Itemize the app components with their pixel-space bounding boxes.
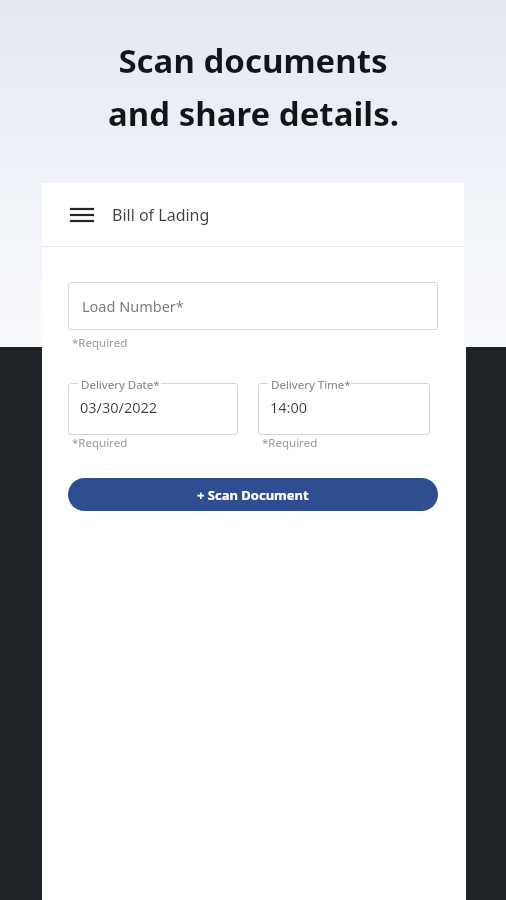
staticText: *Required — [72, 335, 128, 351]
staticText: Delivery Time* — [271, 377, 351, 393]
staticText: 14:00 — [270, 397, 308, 417]
staticText: Bill of Lading — [112, 204, 210, 226]
button[interactable]: + Scan Document — [68, 478, 438, 511]
staticText: Scan documents — [118, 38, 388, 83]
staticText: *Required — [262, 435, 318, 451]
staticText: and share details. — [108, 91, 399, 136]
staticText: Load Number* — [82, 296, 184, 316]
button[interactable]: Open navigation menu — [42, 183, 464, 246]
staticText: 03/30/2022 — [80, 397, 158, 417]
staticText: Delivery Date* — [81, 377, 160, 393]
button[interactable]: Load Number* — [68, 282, 438, 330]
button[interactable]: Open navigation menu — [68, 201, 96, 229]
button[interactable] — [258, 383, 430, 435]
button[interactable] — [68, 383, 238, 435]
staticText: + Scan Document — [197, 486, 309, 504]
staticText: *Required — [72, 435, 128, 451]
